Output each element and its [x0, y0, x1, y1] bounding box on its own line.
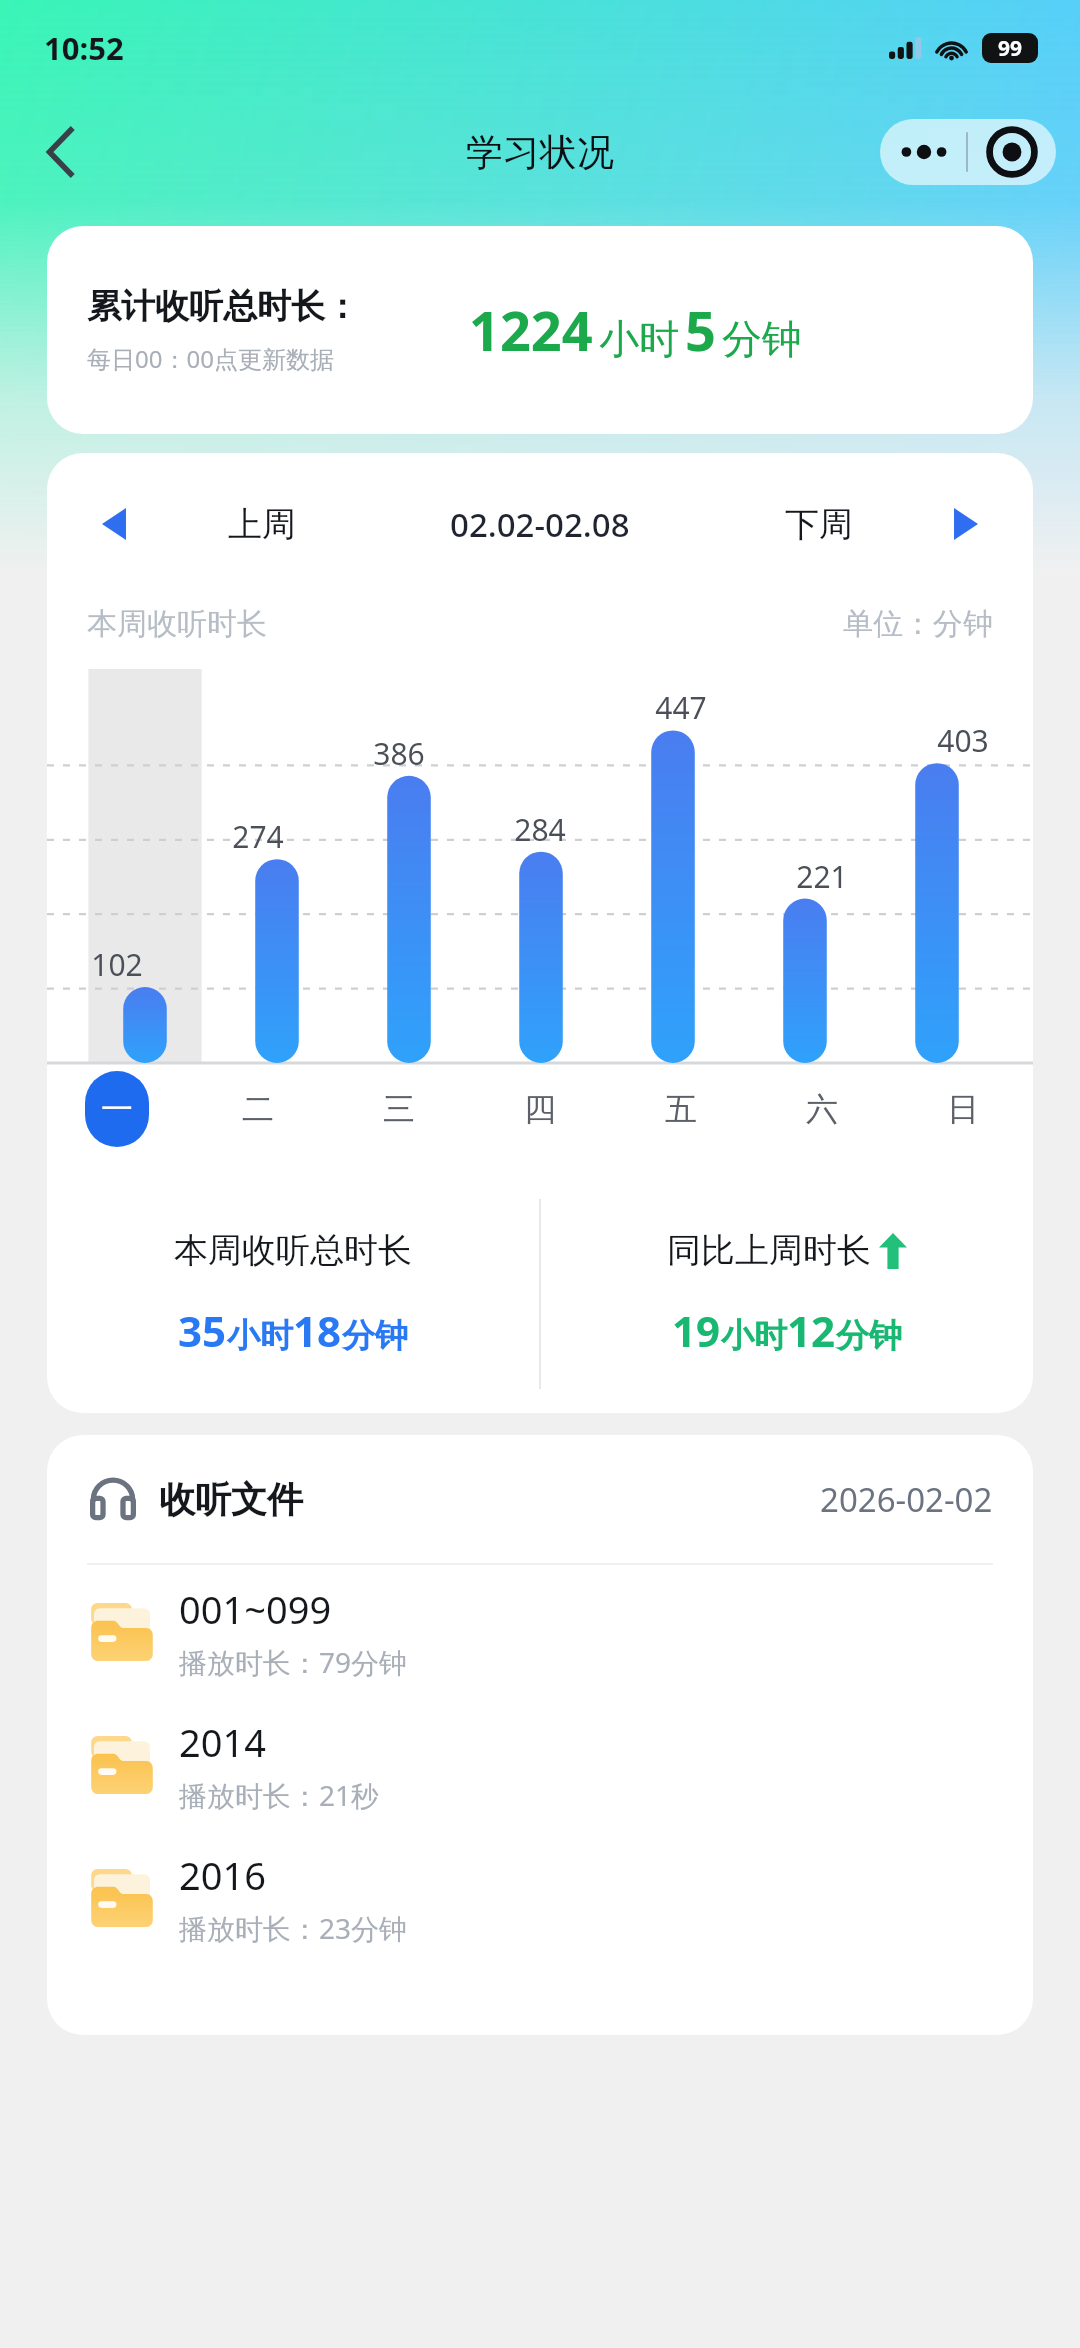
staticText: 三 — [383, 1089, 415, 1129]
staticText: 2014 — [179, 1716, 266, 1768]
staticText: 1224 — [469, 293, 593, 367]
staticText: 本周收听时长 — [87, 605, 267, 643]
staticText: 18 — [293, 1302, 342, 1359]
staticText: 六 — [806, 1089, 838, 1129]
button[interactable]: 二 — [242, 1089, 274, 1129]
staticText: 二 — [242, 1089, 274, 1129]
staticText: 播放时长：21秒 — [179, 1776, 380, 1814]
button[interactable]: 上周 — [228, 503, 296, 546]
button[interactable]: 下周 — [785, 503, 853, 546]
staticText: 一 — [101, 1089, 133, 1129]
staticText: 284 — [514, 809, 566, 850]
button[interactable]: Previous week — [85, 495, 143, 553]
staticText: 19 — [672, 1302, 721, 1359]
staticText: 5 — [685, 293, 716, 367]
staticText: 每日00：00点更新数据 — [87, 342, 334, 375]
button[interactable]: 2016 — [47, 1831, 1033, 1964]
staticText: 02.02-02.08 — [450, 502, 630, 547]
staticText: 播放时长：23分钟 — [179, 1909, 408, 1947]
staticText: 分钟 — [836, 1315, 902, 1357]
staticText: 99 — [998, 34, 1023, 63]
staticText: 学习状况 — [466, 129, 614, 176]
staticText: 累计收听总时长： — [87, 285, 359, 328]
staticText: 分钟 — [342, 1315, 408, 1357]
button[interactable]: 六 — [806, 1089, 838, 1129]
button[interactable]: Menu — [880, 119, 1056, 185]
button[interactable]: 三 — [383, 1089, 415, 1129]
staticText: 分钟 — [722, 314, 802, 364]
staticText: 001~099 — [179, 1583, 332, 1635]
staticText: 274 — [232, 816, 284, 857]
staticText: 2016 — [179, 1849, 266, 1901]
staticText: 播放时长：79分钟 — [179, 1643, 408, 1681]
staticText: 日 — [947, 1089, 979, 1129]
staticText: 2026-02-02 — [820, 1477, 993, 1522]
staticText: 本周收听总时长 — [174, 1229, 412, 1272]
staticText: 386 — [373, 733, 425, 774]
button[interactable]: 五 — [665, 1089, 697, 1129]
staticText: 小时 — [721, 1315, 787, 1357]
staticText: 35 — [178, 1302, 227, 1359]
button[interactable]: 001~099 — [47, 1565, 1033, 1698]
button[interactable]: 累计收听总时长： — [47, 226, 1033, 434]
staticText: 收听文件 — [159, 1477, 303, 1522]
staticText: 12 — [787, 1302, 836, 1359]
button[interactable]: 日 — [947, 1089, 979, 1129]
staticText: 403 — [937, 720, 989, 761]
button[interactable]: Back — [22, 114, 98, 190]
staticText: 小时 — [599, 314, 679, 364]
staticText: 102 — [91, 944, 143, 985]
button[interactable]: 一 — [85, 1071, 149, 1147]
staticText: 10:52 — [44, 27, 124, 69]
staticText: 221 — [796, 856, 848, 897]
staticText: 五 — [665, 1089, 697, 1129]
staticText: 四 — [524, 1089, 556, 1129]
button[interactable]: 2014 — [47, 1698, 1033, 1831]
button[interactable]: Next week — [937, 495, 995, 553]
staticText: 小时 — [227, 1315, 293, 1357]
staticText: 单位：分钟 — [843, 605, 993, 643]
staticText: 447 — [655, 687, 707, 728]
button[interactable]: 四 — [524, 1089, 556, 1129]
staticText: 同比上周时长 — [667, 1229, 871, 1272]
